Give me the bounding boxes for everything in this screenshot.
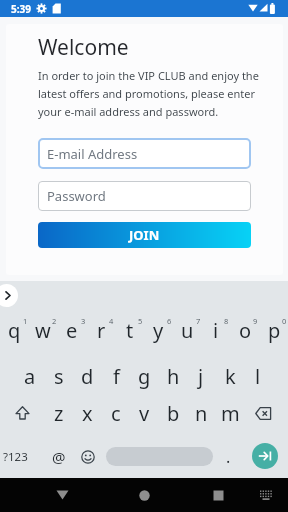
- button[interactable]: [8, 392, 36, 434]
- staticText: 1: [23, 316, 28, 326]
- staticText: e: [66, 317, 78, 344]
- button[interactable]: [249, 392, 277, 434]
- staticText: 7: [196, 316, 201, 326]
- staticText: Password: [47, 187, 106, 205]
- button[interactable]: k: [216, 355, 244, 397]
- staticText: c: [111, 400, 121, 427]
- staticText: w: [35, 317, 51, 344]
- staticText: b: [167, 400, 180, 427]
- staticText: JOIN: [129, 226, 160, 244]
- button[interactable]: j: [187, 355, 215, 397]
- staticText: 5: [138, 316, 143, 326]
- staticText: o: [239, 317, 252, 344]
- button[interactable]: [48, 481, 76, 509]
- staticText: v: [139, 400, 150, 427]
- button[interactable]: n: [187, 392, 215, 434]
- staticText: 9: [253, 316, 258, 326]
- staticText: s: [54, 363, 64, 390]
- button[interactable]: e: [58, 309, 86, 351]
- staticText: g: [138, 363, 151, 390]
- button[interactable]: [252, 443, 278, 469]
- button[interactable]: [252, 481, 280, 509]
- button[interactable]: m: [216, 392, 244, 434]
- staticText: 6: [167, 316, 172, 326]
- staticText: Welcome: [38, 33, 129, 62]
- staticText: 4: [109, 316, 114, 326]
- staticText: q: [8, 317, 21, 344]
- staticText: E-mail Address: [47, 145, 138, 163]
- button[interactable]: d: [73, 355, 101, 397]
- button[interactable]: E-mail Address: [38, 138, 251, 169]
- staticText: d: [81, 363, 94, 390]
- button[interactable]: u: [173, 309, 201, 351]
- staticText: m: [221, 400, 240, 427]
- staticText: a: [24, 363, 36, 390]
- staticText: 5:39: [11, 2, 31, 16]
- staticText: 0: [282, 316, 287, 326]
- button[interactable]: a: [16, 355, 44, 397]
- staticText: u: [181, 317, 194, 344]
- staticText: p: [268, 317, 281, 344]
- button[interactable]: v: [130, 392, 158, 434]
- staticText: y: [153, 317, 164, 344]
- staticText: h: [167, 363, 180, 390]
- staticText: r: [97, 317, 106, 344]
- staticText: f: [113, 363, 120, 390]
- staticText: 3: [81, 316, 86, 326]
- staticText: z: [54, 400, 64, 427]
- button[interactable]: i: [202, 309, 230, 351]
- button[interactable]: s: [45, 355, 73, 397]
- staticText: 2: [52, 316, 57, 326]
- staticText: l: [255, 363, 261, 390]
- button[interactable]: p: [260, 309, 288, 351]
- staticText: ?123: [3, 449, 28, 465]
- button[interactable]: [204, 481, 232, 509]
- button[interactable]: z: [45, 392, 73, 434]
- button[interactable]: h: [159, 355, 187, 397]
- button[interactable]: q: [0, 309, 28, 351]
- button[interactable]: .: [218, 436, 238, 478]
- button[interactable]: r: [87, 309, 115, 351]
- staticText: t: [126, 317, 134, 344]
- button[interactable]: c: [102, 392, 130, 434]
- button[interactable]: g: [130, 355, 158, 397]
- button[interactable]: Password: [38, 181, 251, 211]
- button[interactable]: b: [159, 392, 187, 434]
- button[interactable]: [0, 284, 18, 307]
- staticText: .: [226, 446, 231, 468]
- staticText: x: [82, 400, 93, 427]
- button[interactable]: l: [244, 355, 272, 397]
- button[interactable]: t: [116, 309, 144, 351]
- staticText: @: [52, 447, 66, 467]
- staticText: 8: [224, 316, 229, 326]
- staticText: In order to join the VIP CLUB and enjoy …: [38, 68, 259, 119]
- button[interactable]: f: [102, 355, 130, 397]
- button[interactable]: [130, 481, 158, 509]
- button[interactable]: ?123: [0, 436, 32, 478]
- button[interactable]: y: [144, 309, 172, 351]
- staticText: i: [213, 317, 219, 344]
- button[interactable]: w: [29, 309, 57, 351]
- button[interactable]: JOIN: [38, 222, 251, 248]
- staticText: n: [195, 400, 208, 427]
- button[interactable]: x: [73, 392, 101, 434]
- button[interactable]: @: [45, 436, 73, 478]
- button[interactable]: [74, 436, 102, 478]
- staticText: j: [198, 363, 204, 390]
- button[interactable]: [106, 447, 213, 466]
- staticText: k: [225, 363, 236, 390]
- button[interactable]: o: [231, 309, 259, 351]
